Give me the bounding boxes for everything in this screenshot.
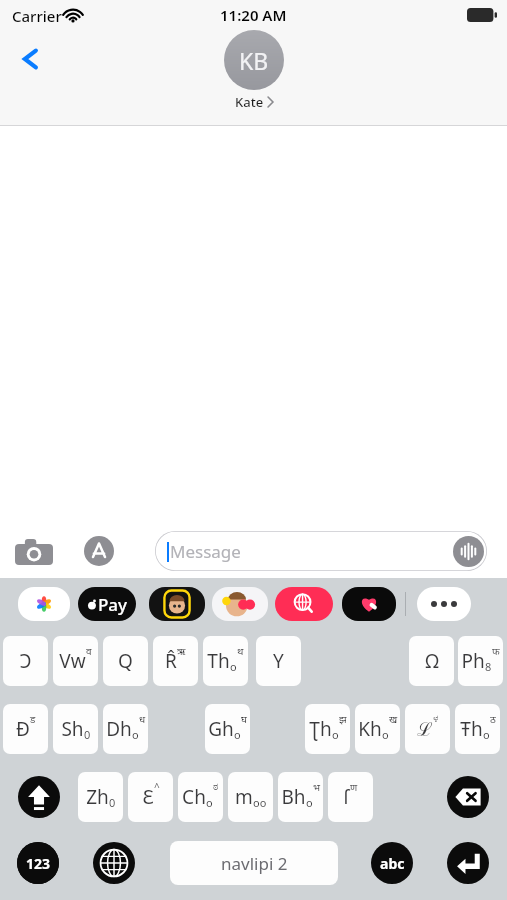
staticText: o — [382, 727, 389, 742]
staticText: ध — [139, 712, 146, 726]
button[interactable]: Back — [10, 38, 52, 80]
staticText: Kh — [358, 716, 382, 742]
staticText: ಳ — [433, 714, 439, 724]
staticText: थ — [237, 644, 244, 658]
button[interactable]: Numbers — [17, 842, 59, 884]
staticText: o — [132, 727, 139, 742]
button[interactable]: Ŧh — [455, 704, 500, 754]
button[interactable]: Message — [155, 531, 487, 571]
button[interactable]: ſ — [328, 772, 373, 822]
button[interactable]: Apps — [84, 536, 114, 566]
staticText: Gh — [208, 716, 234, 742]
button[interactable]: Apple Pay — [78, 587, 136, 621]
staticText: o — [306, 795, 313, 810]
staticText: 8 — [485, 659, 492, 674]
button[interactable]: Backspace — [447, 776, 489, 818]
staticText: ड — [30, 712, 36, 726]
staticText: o — [230, 659, 237, 674]
button[interactable]: Dh — [103, 704, 148, 754]
staticText: Đ — [16, 716, 30, 742]
button[interactable]: abc — [371, 842, 413, 884]
staticText: Q — [118, 648, 133, 674]
button[interactable]: Camera — [14, 536, 54, 566]
button[interactable]: Memoji — [212, 587, 268, 621]
staticText: 0 — [109, 795, 116, 810]
button[interactable]: Shift — [18, 776, 60, 818]
staticText: 11:20 AM — [220, 5, 287, 25]
staticText: Y — [273, 648, 284, 674]
button[interactable]: Return — [447, 842, 489, 884]
button[interactable]: Switch keyboard — [93, 842, 135, 884]
button[interactable]: Y — [256, 636, 301, 686]
staticText: Ŧh — [460, 716, 483, 742]
staticText: ℒ — [417, 716, 433, 742]
button[interactable]: Record audio — [453, 536, 484, 567]
staticText: o — [332, 727, 339, 742]
staticText: o — [483, 727, 490, 742]
button[interactable]: Digital Touch — [342, 587, 396, 621]
button[interactable]: Image search — [275, 587, 333, 621]
staticText: oo — [253, 795, 267, 810]
staticText: घ — [241, 712, 247, 726]
staticText: 0 — [84, 727, 91, 742]
button[interactable]: 123 — [17, 842, 59, 884]
button[interactable]: m — [228, 772, 273, 822]
button[interactable]: Gh — [205, 704, 250, 754]
staticText: Ph — [461, 648, 485, 674]
staticText: Message — [170, 540, 241, 563]
button[interactable]: Zh — [78, 772, 123, 822]
staticText: Ʈh — [309, 716, 332, 742]
staticText: ऋ — [177, 644, 186, 658]
staticText: भ — [313, 780, 321, 794]
button[interactable]: Ph — [458, 636, 503, 686]
staticText: Ɔ — [19, 648, 32, 674]
staticText: Ch — [182, 784, 206, 810]
button[interactable]: Kh — [355, 704, 400, 754]
button[interactable]: Vw — [53, 636, 98, 686]
staticText: ठ — [490, 712, 496, 726]
staticText: फ — [492, 644, 500, 658]
button[interactable]: Ɔ — [3, 636, 48, 686]
button[interactable]: More apps — [417, 587, 471, 621]
staticText: झ — [339, 712, 347, 726]
staticText: Th — [207, 648, 230, 674]
button[interactable]: Ω — [409, 636, 454, 686]
button[interactable]: Ʈh — [305, 704, 350, 754]
staticText: KB — [239, 45, 269, 76]
staticText: ण — [350, 780, 358, 794]
button[interactable]: Th — [203, 636, 248, 686]
staticText: ख — [389, 712, 398, 726]
staticText: ſ — [343, 784, 350, 810]
staticText: Pay — [98, 593, 128, 616]
staticText: m — [235, 784, 253, 810]
button[interactable]: R̂ — [153, 636, 198, 686]
button[interactable]: ℒ — [405, 704, 450, 754]
staticText: Bh — [281, 784, 306, 810]
button[interactable]: navlipi 2 — [170, 841, 338, 885]
staticText: Carrier — [12, 6, 62, 26]
button[interactable]: Sh — [53, 704, 98, 754]
staticText: o — [206, 795, 213, 810]
button[interactable]: KB — [224, 30, 284, 111]
button[interactable]: Ch — [178, 772, 223, 822]
button[interactable]: Memoji stickers — [149, 587, 205, 621]
staticText: Vw — [59, 648, 86, 674]
staticText: R̂ — [165, 648, 177, 674]
staticText: Ɛ — [142, 784, 154, 810]
button[interactable]: Photos — [18, 587, 70, 621]
staticText: Ω — [425, 648, 439, 674]
staticText: 123 — [26, 854, 51, 873]
staticText: व — [86, 644, 92, 658]
button[interactable]: Đ — [3, 704, 48, 754]
staticText: abc — [380, 854, 405, 873]
staticText: ಠ — [213, 782, 219, 792]
staticText: ^ — [154, 780, 160, 794]
staticText: Dh — [106, 716, 132, 742]
staticText: Sh — [61, 716, 84, 742]
button[interactable]: Q — [103, 636, 148, 686]
staticText: o — [234, 727, 241, 742]
staticText: Zh — [86, 784, 109, 810]
button[interactable]: Bh — [278, 772, 323, 822]
staticText: navlipi 2 — [221, 852, 288, 875]
button[interactable]: Ɛ — [128, 772, 173, 822]
